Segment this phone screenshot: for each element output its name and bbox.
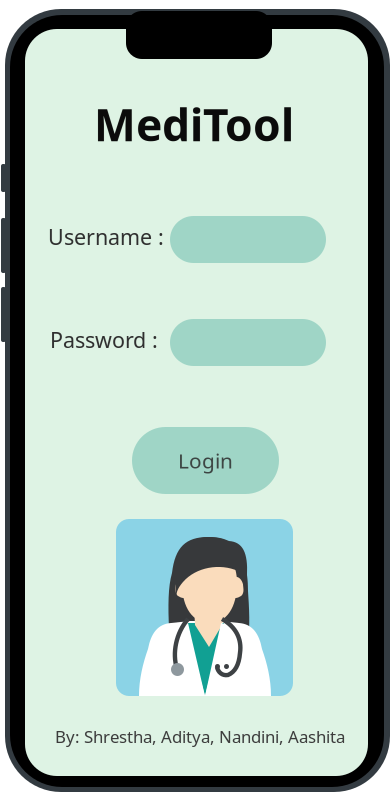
staticText: MediTool bbox=[94, 94, 294, 154]
staticText: Password : bbox=[50, 325, 158, 354]
button[interactable]: Login bbox=[132, 427, 279, 494]
staticText: Username : bbox=[48, 222, 164, 251]
staticText: By: Shrestha, Aditya, Nandini, Aashita bbox=[55, 725, 345, 748]
staticText: Login bbox=[178, 446, 233, 475]
